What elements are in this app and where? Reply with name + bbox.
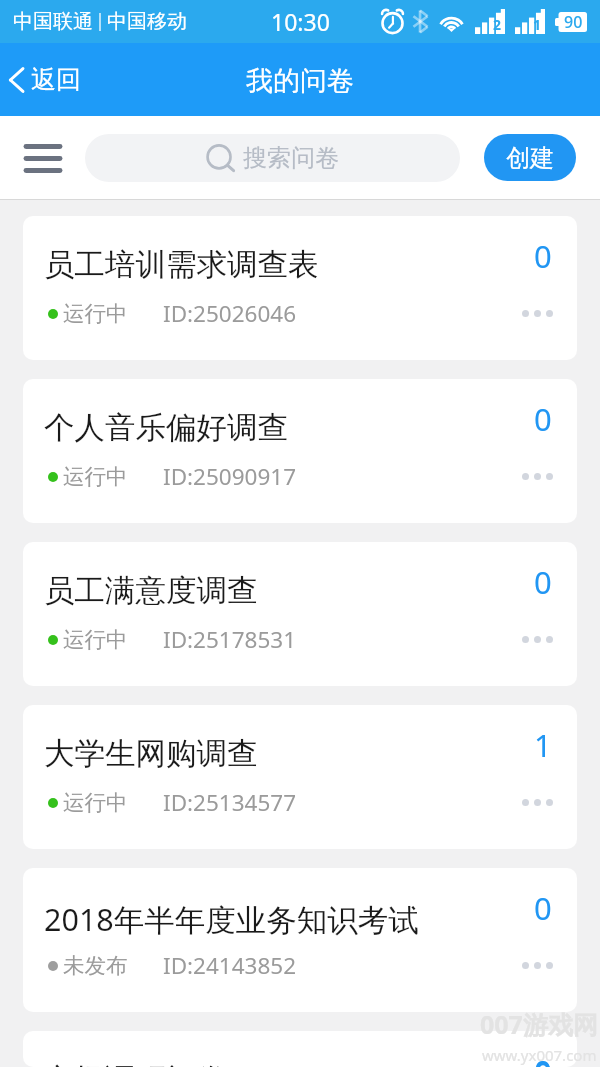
staticText: 0 xyxy=(534,235,552,277)
button[interactable]: 大学生网购调查 xyxy=(23,705,577,849)
staticText: www.yx007.com xyxy=(482,1045,597,1065)
staticText: 运行中 xyxy=(63,300,128,327)
button[interactable]: 市场调研问卷 xyxy=(23,1031,577,1067)
staticText: ID:24143852 xyxy=(163,950,297,981)
button[interactable]: 2018年半年度业务知识考试 xyxy=(23,868,577,1012)
button[interactable]: 搜索问卷 xyxy=(85,134,460,182)
staticText: 1 xyxy=(533,15,542,34)
staticText: 90 xyxy=(564,11,583,33)
button[interactable]: Loading xyxy=(529,1055,557,1067)
staticText: ID:25178531 xyxy=(163,624,297,655)
staticText: 我的问卷 xyxy=(246,64,354,98)
staticText: 007游戏网 xyxy=(480,1007,598,1041)
button[interactable]: More options xyxy=(522,962,553,969)
button[interactable]: 员工满意度调查 xyxy=(23,542,577,686)
staticText: 员工满意度调查 xyxy=(44,572,258,610)
staticText: 中国移动 xyxy=(107,9,187,34)
staticText: 运行中 xyxy=(63,626,128,653)
staticText: 2018年半年度业务知识考试 xyxy=(44,898,419,940)
staticText: ID:25026046 xyxy=(163,298,297,329)
staticText: 中国联通 xyxy=(13,9,93,34)
button[interactable]: More options xyxy=(522,310,553,317)
staticText: 大学生网购调查 xyxy=(44,735,258,773)
staticText: 个人音乐偏好调查 xyxy=(44,409,288,447)
button[interactable]: 员工培训需求调查表 xyxy=(23,216,577,360)
staticText: ID:25134577 xyxy=(163,787,297,818)
staticText: 1 xyxy=(534,724,552,766)
button[interactable]: More options xyxy=(522,799,553,806)
staticText: ID:25090917 xyxy=(163,461,297,492)
staticText: 0 xyxy=(534,561,552,603)
staticText: 员工培训需求调查表 xyxy=(44,246,319,284)
button[interactable]: 个人音乐偏好调查 xyxy=(23,379,577,523)
staticText: 0 xyxy=(534,1050,552,1067)
button[interactable]: Menu xyxy=(10,125,76,191)
staticText: 0 xyxy=(534,398,552,440)
staticText: 0 xyxy=(534,887,552,929)
staticText: 2 xyxy=(493,15,502,34)
staticText: 10:30 xyxy=(271,6,330,37)
staticText: 搜索问卷 xyxy=(243,143,339,173)
staticText: 未发布 xyxy=(63,952,128,979)
staticText: 创建 xyxy=(506,143,554,173)
button[interactable]: 返回 xyxy=(6,58,89,101)
button[interactable]: More options xyxy=(522,636,553,643)
staticText: 返回 xyxy=(31,64,81,95)
staticText: 市场调研问卷 xyxy=(44,1061,227,1067)
staticText: 运行中 xyxy=(63,789,128,816)
button[interactable]: More options xyxy=(522,473,553,480)
button[interactable]: 创建 xyxy=(484,134,576,181)
staticText: 运行中 xyxy=(63,463,128,490)
